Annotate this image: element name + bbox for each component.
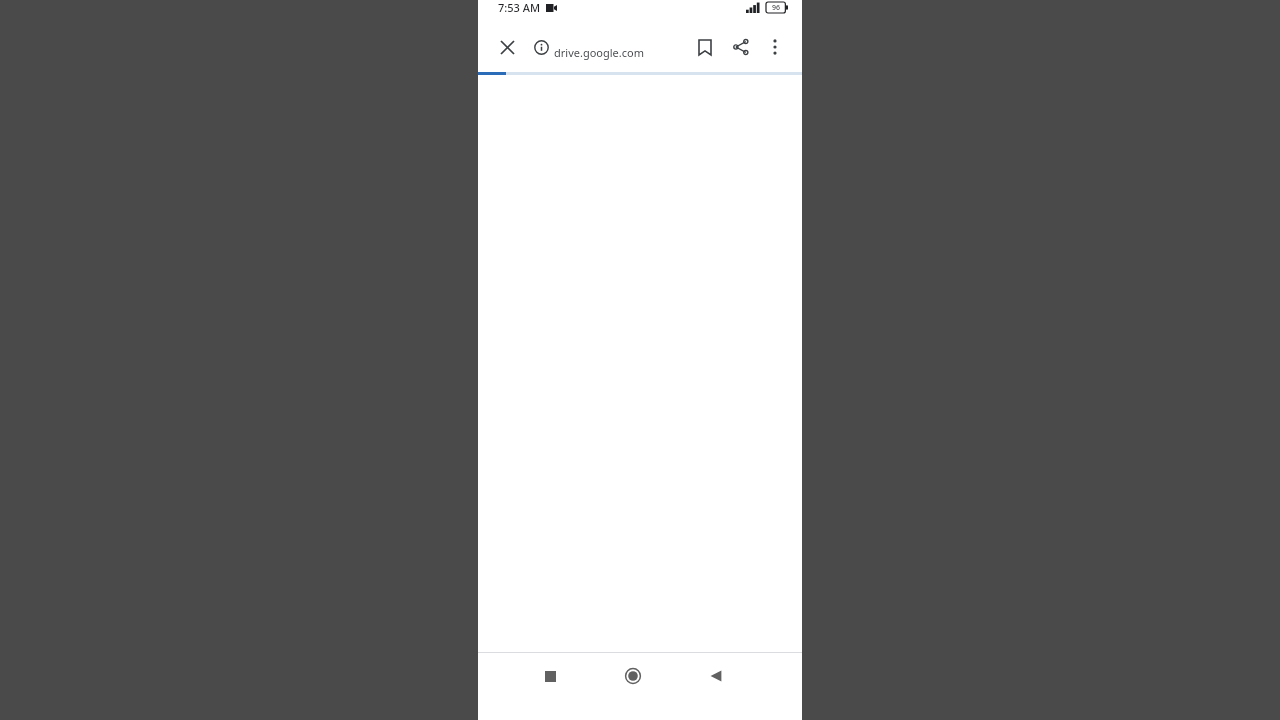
staticText: 96 — [772, 3, 781, 13]
button[interactable]: Share — [726, 32, 756, 62]
button[interactable]: Back — [695, 655, 737, 697]
staticText: drive.google.com — [554, 45, 644, 60]
button[interactable]: drive.google.com — [530, 34, 690, 60]
button[interactable]: Bookmark — [690, 32, 720, 62]
button[interactable]: More options — [760, 32, 790, 62]
button[interactable]: Recent apps — [529, 655, 571, 697]
button[interactable]: Home — [612, 655, 654, 697]
staticText: 7:53 AM — [498, 0, 541, 15]
button[interactable]: Close — [492, 32, 522, 62]
